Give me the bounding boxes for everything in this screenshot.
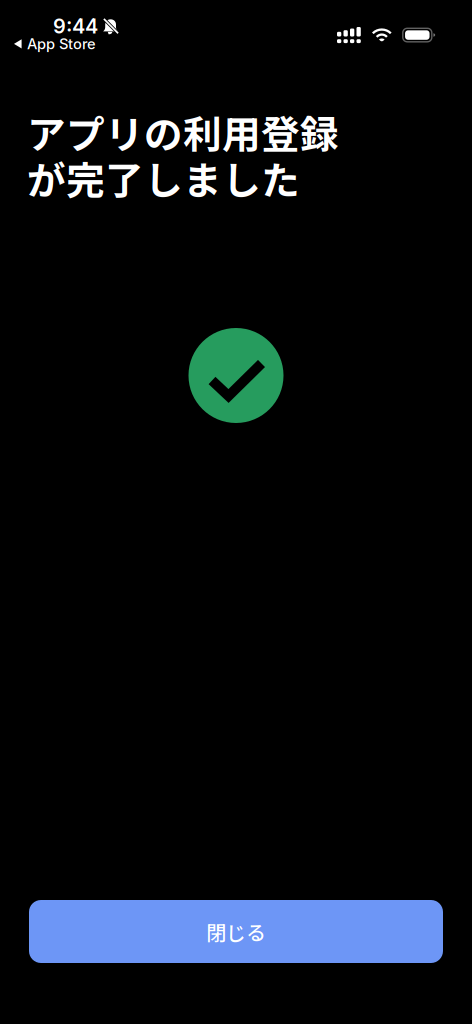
staticText: アプリの利用登録 <box>27 104 339 160</box>
staticText: 閉じる <box>206 917 266 946</box>
staticText: が完了しました <box>27 150 300 206</box>
button[interactable]: 閉じる <box>29 900 443 963</box>
staticText: App Store <box>27 35 96 53</box>
staticText: 9:44 <box>53 14 98 38</box>
button[interactable]: App Store <box>8 31 102 57</box>
